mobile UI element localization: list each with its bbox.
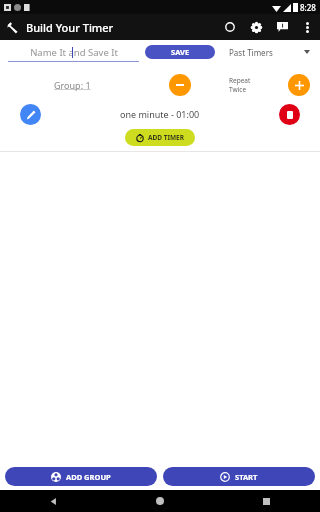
staticText: Twice xyxy=(229,85,247,94)
button[interactable]: Group: 1 xyxy=(0,79,145,91)
button[interactable]: Repeat xyxy=(229,76,251,94)
staticText: one minute - 01:00 xyxy=(120,108,200,120)
staticText: Repeat xyxy=(229,76,251,85)
staticText: Name It and Save It xyxy=(30,46,118,59)
button[interactable]: Messages xyxy=(272,17,292,37)
button[interactable]: More options xyxy=(298,18,316,36)
button[interactable]: ADD TIMER xyxy=(125,129,195,146)
staticText: Past Timers xyxy=(229,47,273,58)
button[interactable]: History xyxy=(220,17,240,37)
staticText: ADD TIMER xyxy=(148,133,185,142)
button[interactable]: Add group xyxy=(288,74,310,96)
button[interactable]: Name It and Save It xyxy=(8,42,139,62)
staticText: Build Your Timer xyxy=(26,20,114,35)
button[interactable]: ADD GROUP xyxy=(5,467,157,486)
button[interactable]: SAVE xyxy=(145,45,215,59)
staticText: 8:28 xyxy=(300,2,316,13)
staticText: Group: 1 xyxy=(54,79,91,91)
button[interactable]: Past Timers xyxy=(229,42,320,62)
button[interactable]: Stop timer xyxy=(279,104,300,125)
button[interactable]: Edit timer xyxy=(20,104,41,125)
button[interactable]: START xyxy=(163,467,315,486)
button[interactable]: Recent apps xyxy=(213,490,320,512)
staticText: SAVE xyxy=(171,47,190,57)
staticText: ADD GROUP xyxy=(66,472,111,482)
button[interactable]: Remove group xyxy=(169,74,191,96)
staticText: START xyxy=(235,472,258,482)
button[interactable]: Settings xyxy=(246,17,266,37)
button[interactable]: Home xyxy=(106,490,213,512)
button[interactable]: Back xyxy=(0,490,106,512)
